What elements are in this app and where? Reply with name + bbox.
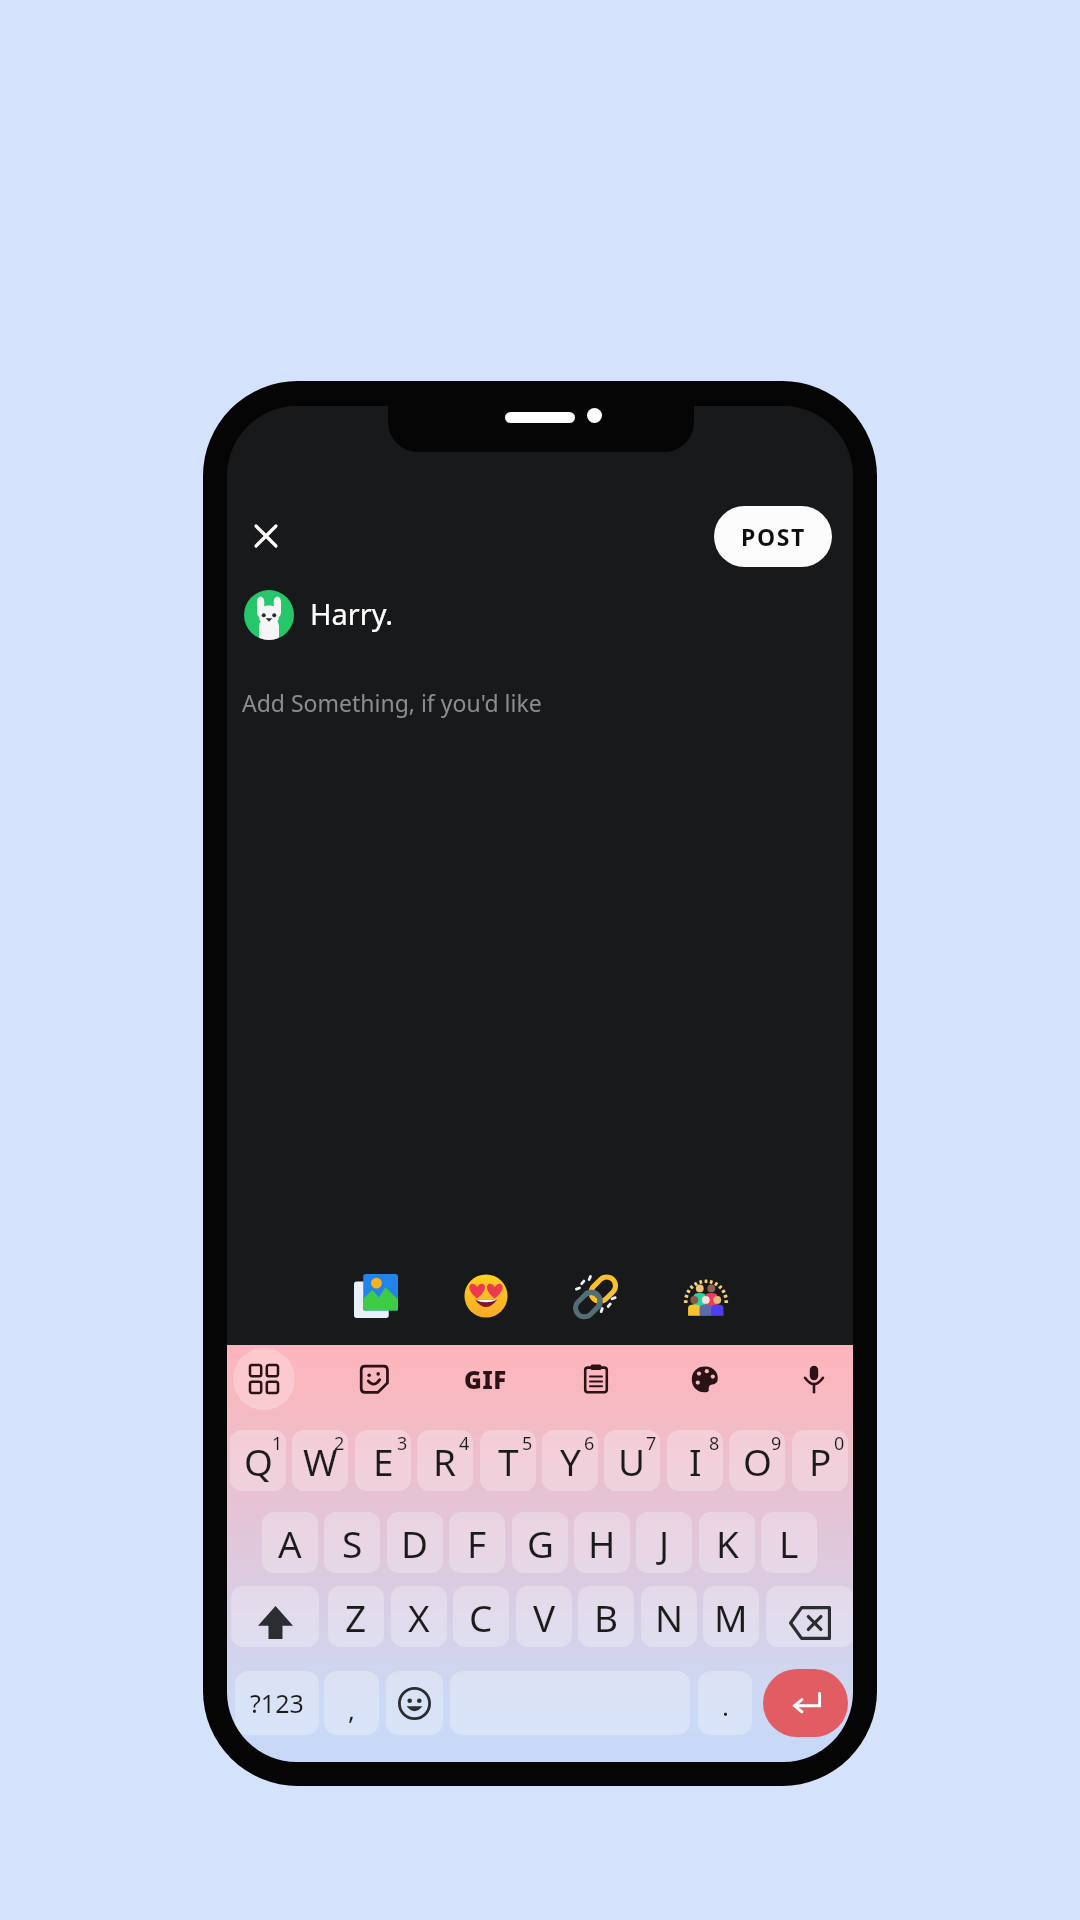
staticText: Harry. <box>310 594 394 633</box>
staticText: GIF <box>464 1363 507 1396</box>
staticText: Q <box>244 1436 273 1486</box>
staticText: T <box>498 1436 519 1486</box>
button[interactable]: Add link <box>566 1266 626 1326</box>
button[interactable]: Add photo <box>346 1266 406 1326</box>
button[interactable]: Emoji <box>386 1671 443 1735</box>
button[interactable]: Z <box>328 1586 384 1647</box>
staticText: L <box>779 1518 799 1568</box>
button[interactable]: I <box>667 1430 723 1491</box>
staticText: 6 <box>584 1431 595 1456</box>
button[interactable]: A <box>262 1512 318 1573</box>
staticText: 3 <box>397 1431 408 1456</box>
staticText: 1 <box>272 1431 283 1456</box>
staticText: 9 <box>771 1431 782 1456</box>
button[interactable]: U <box>604 1430 660 1491</box>
staticText: ?123 <box>250 1686 304 1720</box>
button[interactable]: J <box>636 1512 692 1573</box>
button[interactable]: E <box>355 1430 411 1491</box>
staticText: 2 <box>334 1431 345 1456</box>
button[interactable]: C <box>453 1586 509 1647</box>
staticText: D <box>401 1518 429 1568</box>
button[interactable]: Close <box>238 508 294 564</box>
button[interactable]: Backspace <box>766 1586 853 1647</box>
staticText: B <box>594 1592 619 1642</box>
button[interactable]: ?123 <box>235 1671 319 1735</box>
button[interactable]: X <box>391 1586 447 1647</box>
staticText: E <box>373 1436 394 1486</box>
button[interactable]: P <box>792 1430 848 1491</box>
button[interactable]: Shift <box>231 1586 319 1647</box>
staticText: C <box>469 1592 493 1642</box>
button[interactable]: N <box>641 1586 697 1647</box>
button[interactable]: B <box>578 1586 634 1647</box>
staticText: O <box>743 1436 772 1486</box>
staticText: 7 <box>646 1431 657 1456</box>
button[interactable]: POST <box>714 506 832 567</box>
button[interactable]: Clipboard <box>567 1350 625 1408</box>
button[interactable]: Tag people <box>676 1266 736 1326</box>
staticText: V <box>533 1592 556 1642</box>
staticText: POST <box>741 521 806 552</box>
staticText: A <box>278 1518 302 1568</box>
button[interactable]: L <box>761 1512 817 1573</box>
button[interactable]: Enter <box>763 1669 848 1737</box>
staticText: . <box>722 1688 729 1723</box>
staticText: Z <box>345 1592 367 1642</box>
staticText: F <box>467 1518 487 1568</box>
button[interactable]: F <box>449 1512 505 1573</box>
staticText: Y <box>560 1436 581 1486</box>
staticText: , <box>348 1692 355 1727</box>
button[interactable]: Y <box>542 1430 598 1491</box>
button[interactable]: T <box>480 1430 536 1491</box>
staticText: W <box>303 1436 338 1486</box>
staticText: J <box>659 1518 670 1568</box>
staticText: K <box>716 1518 739 1568</box>
button[interactable]: W <box>292 1430 348 1491</box>
button[interactable]: Add emoji <box>456 1266 516 1326</box>
staticText: S <box>342 1518 363 1568</box>
button[interactable]: V <box>516 1586 572 1647</box>
staticText: P <box>809 1436 832 1486</box>
button[interactable]: O <box>729 1430 785 1491</box>
staticText: 8 <box>709 1431 720 1456</box>
button[interactable]: H <box>574 1512 630 1573</box>
staticText: Add Something, if you'd like <box>242 687 542 718</box>
button[interactable]: S <box>324 1512 380 1573</box>
button[interactable]: G <box>512 1512 568 1573</box>
button[interactable]: K <box>699 1512 755 1573</box>
button[interactable]: Voice input <box>785 1350 843 1408</box>
staticText: G <box>527 1518 554 1568</box>
button[interactable]: Themes <box>676 1350 734 1408</box>
button[interactable]: Keyboard modes <box>233 1348 295 1410</box>
staticText: M <box>714 1592 748 1642</box>
staticText: 4 <box>459 1431 470 1456</box>
staticText: X <box>408 1592 430 1642</box>
staticText: U <box>618 1436 646 1486</box>
button[interactable]: GIF <box>454 1348 516 1410</box>
button[interactable]: , <box>324 1671 379 1735</box>
staticText: H <box>588 1518 616 1568</box>
button[interactable]: M <box>703 1586 759 1647</box>
staticText: 5 <box>522 1431 533 1456</box>
staticText: N <box>655 1592 684 1642</box>
staticText: 0 <box>834 1431 845 1456</box>
button[interactable]: Sticker <box>345 1350 403 1408</box>
button[interactable]: . <box>698 1671 752 1735</box>
staticText: I <box>689 1436 702 1486</box>
button[interactable]: Q <box>230 1430 286 1491</box>
button[interactable]: D <box>387 1512 443 1573</box>
button[interactable]: R <box>417 1430 473 1491</box>
staticText: R <box>433 1436 457 1486</box>
